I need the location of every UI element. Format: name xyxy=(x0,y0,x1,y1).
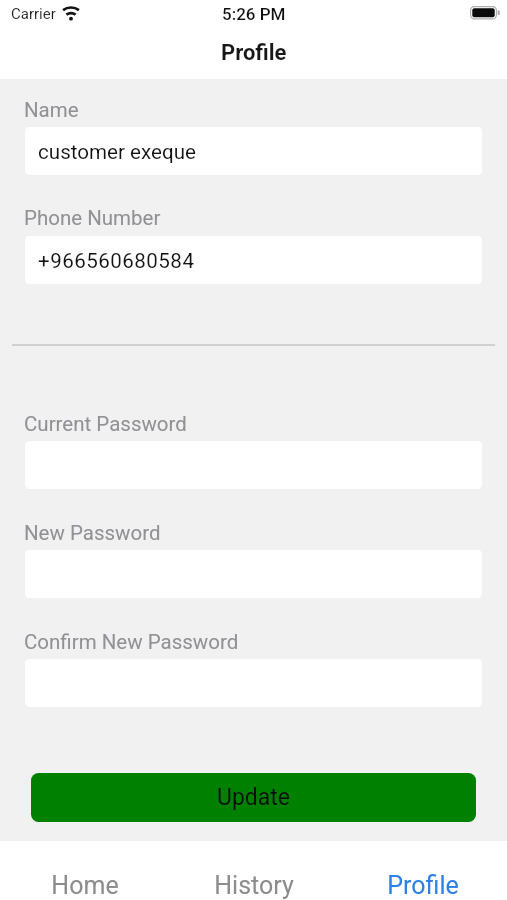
staticText: Update xyxy=(217,784,291,811)
staticText: Name xyxy=(24,98,79,122)
staticText: Home xyxy=(51,871,119,900)
staticText: customer exeque xyxy=(38,140,196,164)
button[interactable]: History xyxy=(169,841,338,900)
staticText: Current Password xyxy=(24,412,187,436)
staticText: Carrier xyxy=(11,5,56,23)
staticText: Confirm New Password xyxy=(24,630,239,654)
staticText: Profile xyxy=(387,871,459,900)
staticText: History xyxy=(214,871,294,900)
other: Wi-Fi xyxy=(60,4,82,21)
button[interactable]: Update xyxy=(31,773,476,822)
button[interactable]: Profile xyxy=(338,841,507,900)
button[interactable]: +966560680584 xyxy=(25,236,482,284)
staticText: 5:26 PM xyxy=(222,4,286,24)
staticText: New Password xyxy=(24,521,161,545)
staticText: +966560680584 xyxy=(38,249,195,273)
button[interactable]: Home xyxy=(0,841,169,900)
staticText: Phone Number xyxy=(24,206,161,230)
staticText: Profile xyxy=(221,40,287,66)
other: Battery xyxy=(470,6,500,20)
button[interactable]: customer exeque xyxy=(25,127,482,175)
